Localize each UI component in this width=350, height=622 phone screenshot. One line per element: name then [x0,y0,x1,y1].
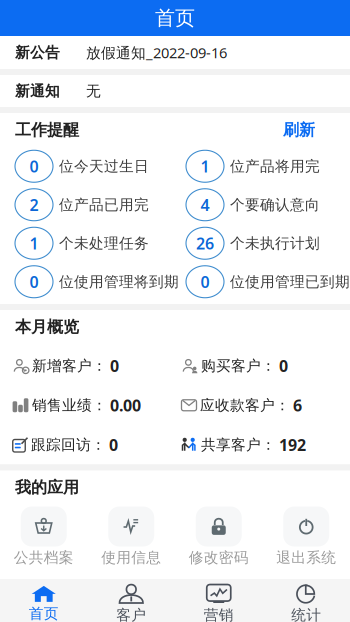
button[interactable]: 0 [175,262,340,301]
staticText: 0 [29,271,38,292]
button[interactable]: 客户 [87,584,175,622]
staticText: 位产品将用完 [230,157,320,175]
staticText: 1 [29,233,38,254]
button[interactable]: 公共档案 [0,506,87,566]
staticText: 0 [279,355,288,376]
staticText: 客户 [116,606,146,622]
staticText: 退出系统 [276,548,336,566]
button[interactable]: 0 [15,147,175,185]
staticText: 位今天过生日 [59,157,149,175]
staticText: 跟踪回访： [31,436,106,454]
button[interactable]: 统计 [262,584,350,622]
staticText: 0 [110,355,119,376]
staticText: 购买客户： [201,357,276,375]
staticText: 修改密码 [189,548,249,566]
staticText: 无 [86,82,101,100]
staticText: 新通知 [15,82,60,100]
staticText: 营销 [204,606,234,622]
staticText: 位产品已用完 [59,196,149,214]
staticText: 0 [200,271,209,292]
staticText: 新增客户： [32,357,107,375]
staticText: 公共档案 [14,548,74,566]
staticText: 26 [196,233,214,254]
staticText: 位使用管理将到期 [59,273,179,291]
staticText: 192 [279,434,306,455]
staticText: 销售业绩： [32,396,107,414]
staticText: 个要确认意向 [230,196,320,214]
staticText: 共享客户： [201,436,276,454]
staticText: 位使用管理已到期 [230,273,350,291]
staticText: 6 [293,395,302,416]
button[interactable]: 2 [15,185,175,224]
staticText: 应收款客户： [200,396,290,414]
staticText: 1 [200,156,209,177]
button[interactable]: 刷新 [283,120,350,140]
button[interactable]: 首页 [0,585,87,622]
staticText: 个未处理任务 [59,234,149,252]
staticText: 0 [109,434,118,455]
button[interactable]: 0 [15,262,175,301]
button[interactable]: 修改密码 [175,506,262,566]
button[interactable]: 使用信息 [87,506,175,566]
staticText: 4 [200,194,209,215]
staticText: 本月概览 [15,317,79,337]
staticText: 工作提醒 [15,120,79,140]
button[interactable]: 营销 [175,584,262,622]
staticText: 0.00 [110,395,141,416]
staticText: 新公告 [15,43,60,61]
button[interactable]: 4 [175,185,340,224]
staticText: 首页 [155,6,195,30]
button[interactable]: 26 [175,224,340,262]
staticText: 刷新 [283,120,315,140]
staticText: 统计 [291,606,321,622]
button[interactable]: 1 [15,224,175,262]
staticText: 2 [29,194,38,215]
staticText: 我的应用 [15,478,79,497]
staticText: 个未执行计划 [230,234,320,252]
staticText: 首页 [29,604,59,622]
staticText: 放假通知_2022-09-16 [86,43,227,62]
button[interactable]: 1 [175,147,340,185]
staticText: 使用信息 [101,548,161,566]
staticText: 0 [29,156,38,177]
button[interactable]: 退出系统 [262,506,350,566]
